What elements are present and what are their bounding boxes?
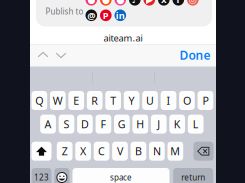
- staticText: ●: [102, 0, 110, 5]
- button[interactable]: return: [173, 168, 213, 183]
- staticText: A: [45, 117, 52, 131]
- staticText: V: [117, 144, 123, 158]
- button[interactable]: L: [188, 115, 203, 134]
- staticText: Z: [62, 144, 68, 158]
- button[interactable]: F: [95, 115, 111, 134]
- staticText: P: [103, 9, 109, 21]
- staticText: C: [98, 144, 105, 158]
- button[interactable]: 123: [31, 168, 51, 183]
- button[interactable]: D: [77, 115, 93, 134]
- button[interactable]: E: [68, 91, 84, 110]
- staticText: Publish to: [45, 6, 83, 17]
- staticText: space: [110, 172, 132, 183]
- staticText: in: [116, 9, 125, 21]
- button[interactable]: M: [167, 142, 183, 161]
- button[interactable]: Z: [57, 142, 72, 161]
- button[interactable]: V: [112, 142, 128, 161]
- staticText: L: [193, 117, 199, 131]
- staticText: @: [87, 9, 95, 21]
- staticText: K: [174, 117, 181, 131]
- button[interactable]: Emoji: [54, 168, 69, 183]
- staticText: ▶: [146, 0, 153, 5]
- staticText: X: [161, 0, 167, 6]
- staticText: F: [100, 117, 106, 131]
- button[interactable]: O: [179, 91, 195, 110]
- staticText: Y: [129, 93, 135, 108]
- button[interactable]: A: [40, 115, 56, 134]
- staticText: I: [166, 93, 170, 108]
- staticText: ●: [116, 0, 124, 5]
- button[interactable]: Delete: [193, 142, 213, 161]
- button[interactable]: Q: [31, 91, 47, 110]
- button[interactable]: T: [105, 91, 121, 110]
- button[interactable]: space: [72, 168, 169, 183]
- staticText: D: [81, 117, 89, 131]
- staticText: O: [183, 93, 191, 108]
- staticText: T: [110, 93, 116, 108]
- button[interactable]: X: [75, 142, 91, 161]
- staticText: f: [176, 0, 180, 6]
- button[interactable]: H: [132, 115, 148, 134]
- staticText: M: [170, 144, 180, 158]
- staticText: B: [135, 144, 142, 158]
- staticText: N: [153, 144, 161, 158]
- staticText: Done: [179, 47, 210, 63]
- button[interactable]: I: [161, 91, 176, 110]
- button[interactable]: G: [114, 115, 130, 134]
- button[interactable]: Y: [124, 91, 139, 110]
- staticText: R: [91, 93, 98, 108]
- button[interactable]: C: [94, 142, 109, 161]
- button[interactable]: U: [142, 91, 158, 110]
- staticText: W: [53, 93, 63, 108]
- button[interactable]: Previous field: [35, 47, 51, 63]
- staticText: X: [80, 144, 86, 158]
- staticText: return: [181, 172, 205, 183]
- staticText: H: [136, 117, 144, 131]
- staticText: J: [157, 117, 160, 131]
- staticText: ●: [87, 0, 95, 5]
- staticText: aiteam.ai: [103, 32, 142, 44]
- staticText: G: [118, 117, 126, 131]
- button[interactable]: B: [131, 142, 146, 161]
- button[interactable]: K: [169, 115, 185, 134]
- button[interactable]: S: [59, 115, 74, 134]
- button[interactable]: R: [87, 91, 102, 110]
- button[interactable]: N: [149, 142, 165, 161]
- button[interactable]: J: [151, 115, 167, 134]
- button[interactable]: P: [197, 91, 213, 110]
- staticText: ◎: [189, 0, 197, 5]
- button[interactable]: Next field: [53, 47, 69, 63]
- staticText: E: [73, 93, 79, 108]
- staticText: ♪: [132, 0, 138, 5]
- button[interactable]: Shift: [31, 142, 51, 161]
- button[interactable]: W: [50, 91, 66, 110]
- staticText: P: [202, 93, 208, 108]
- button[interactable]: Done: [178, 47, 212, 63]
- staticText: U: [146, 93, 154, 108]
- staticText: S: [63, 117, 69, 131]
- staticText: 123: [34, 172, 49, 183]
- staticText: Q: [35, 93, 43, 108]
